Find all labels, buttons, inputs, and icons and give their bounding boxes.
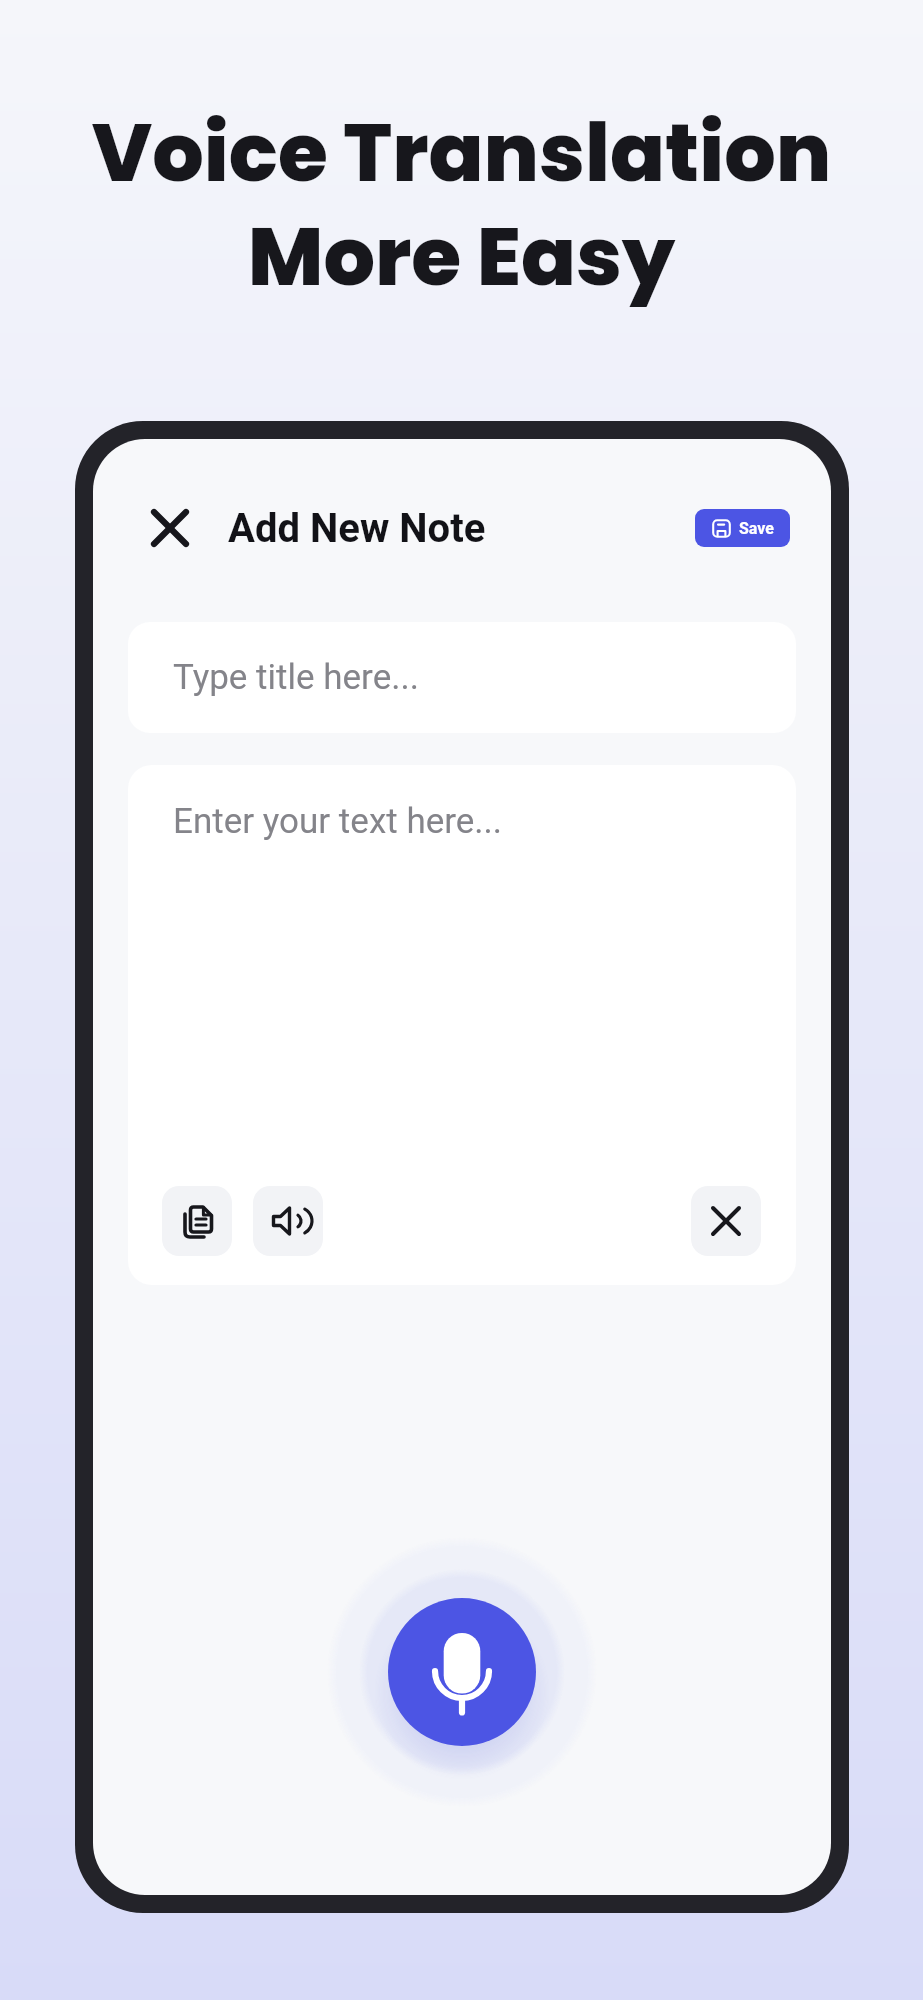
button[interactable]	[253, 1186, 323, 1256]
staticText: Enter your text here...	[173, 801, 502, 842]
staticText: Type title here...	[173, 657, 419, 698]
staticText: Save	[739, 519, 774, 538]
button[interactable]	[691, 1186, 761, 1256]
button[interactable]: Type title here...	[128, 622, 796, 733]
button[interactable]	[145, 503, 195, 553]
button[interactable]	[162, 1186, 232, 1256]
button[interactable]: Save	[695, 509, 790, 547]
button[interactable]: Enter your text here...	[128, 765, 796, 1285]
staticText: Add New Note	[228, 505, 486, 552]
staticText: Voice Translation More Easy	[0, 96, 923, 314]
button[interactable]	[388, 1598, 536, 1746]
